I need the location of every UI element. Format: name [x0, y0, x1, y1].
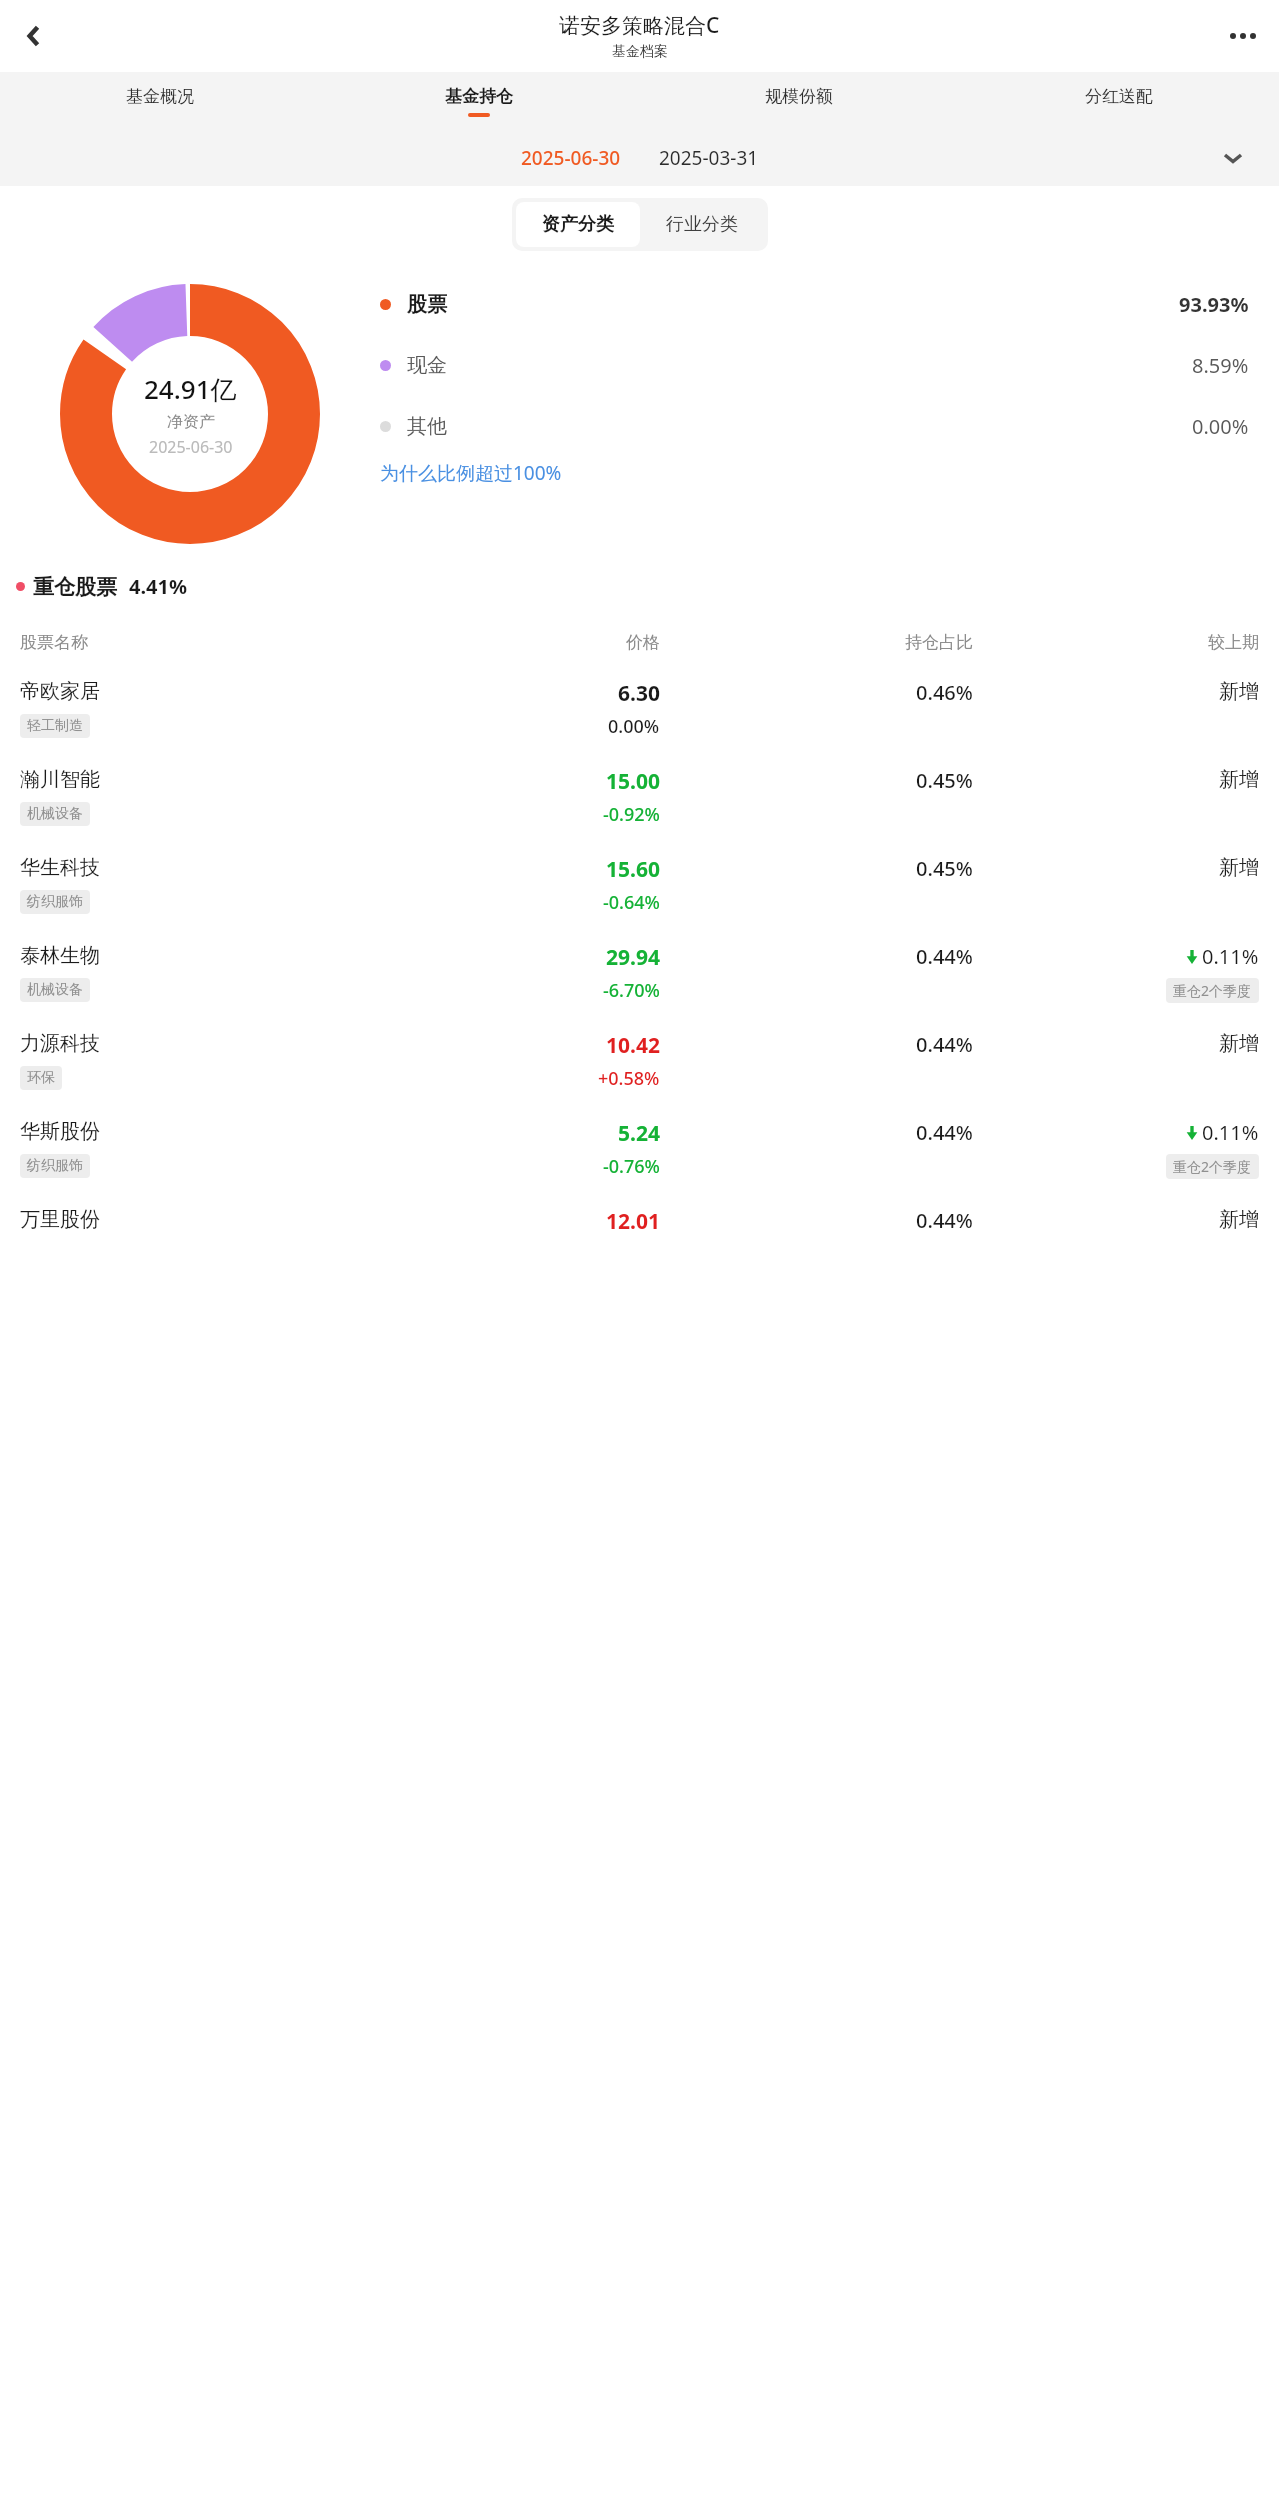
- staticText: 纺织服饰: [27, 1157, 83, 1175]
- button[interactable]: 为什么比例超过100%: [380, 460, 562, 486]
- staticText: 华生科技: [20, 855, 100, 880]
- staticText: 基金档案: [612, 43, 668, 61]
- staticText: 瀚川智能: [20, 767, 100, 792]
- button[interactable]: 分红送配: [959, 72, 1279, 130]
- staticText: 资产分类: [542, 213, 614, 236]
- button[interactable]: 泰林生物: [0, 925, 1279, 1013]
- staticText: 0.44%: [916, 943, 973, 970]
- staticText: 93.93%: [1179, 291, 1249, 318]
- staticText: 0.11%: [1202, 1119, 1259, 1146]
- staticText: 29.94: [606, 943, 660, 972]
- staticText: 新增: [1219, 679, 1259, 704]
- button[interactable]: 基金持仓: [319, 72, 639, 130]
- button[interactable]: 帝欧家居: [0, 661, 1279, 749]
- staticText: 0.44%: [916, 1207, 973, 1234]
- staticText: 规模份额: [765, 86, 833, 107]
- staticText: 15.00: [606, 767, 660, 796]
- button[interactable]: More options: [1219, 12, 1267, 60]
- staticText: 重仓股票: [33, 574, 117, 600]
- staticText: 较上期: [973, 632, 1259, 653]
- button[interactable]: 华斯股份: [0, 1101, 1279, 1189]
- staticText: 机械设备: [27, 981, 83, 999]
- staticText: 0.11%: [1202, 943, 1259, 970]
- button[interactable]: 2025-03-31: [651, 145, 767, 171]
- button[interactable]: 力源科技: [0, 1013, 1279, 1101]
- staticText: 0.44%: [916, 1119, 973, 1146]
- staticText: 重仓2个季度: [1173, 1157, 1252, 1176]
- staticText: 5.24: [618, 1119, 660, 1148]
- button[interactable]: Expand dates: [1213, 138, 1253, 178]
- staticText: 纺织服饰: [27, 893, 83, 911]
- staticText: 0.45%: [916, 767, 973, 794]
- staticText: 股票名称: [20, 632, 388, 653]
- staticText: 基金概况: [126, 86, 194, 107]
- staticText: 行业分类: [666, 213, 738, 236]
- staticText: 新增: [1219, 767, 1259, 792]
- staticText: 价格: [388, 632, 660, 653]
- staticText: 为什么比例超过100%: [380, 460, 562, 486]
- staticText: 帝欧家居: [20, 679, 100, 704]
- button[interactable]: 基金概况: [0, 72, 319, 130]
- staticText: -0.64%: [603, 890, 660, 915]
- staticText: -0.92%: [603, 802, 660, 827]
- staticText: 2025-03-31: [659, 145, 759, 171]
- staticText: 8.59%: [1192, 352, 1249, 379]
- staticText: 持仓占比: [660, 632, 973, 653]
- staticText: 0.00%: [1192, 413, 1249, 440]
- staticText: 力源科技: [20, 1031, 100, 1056]
- staticText: 基金持仓: [445, 86, 513, 107]
- staticText: 环保: [27, 1069, 55, 1087]
- staticText: 2025-06-30: [521, 145, 621, 171]
- staticText: 0.00%: [608, 714, 660, 739]
- staticText: -6.70%: [603, 978, 660, 1003]
- staticText: 6.30: [618, 679, 660, 708]
- button[interactable]: 行业分类: [640, 202, 764, 247]
- staticText: 0.46%: [916, 679, 973, 706]
- staticText: 机械设备: [27, 805, 83, 823]
- staticText: 净资产: [167, 412, 215, 432]
- button[interactable]: 瀚川智能: [0, 749, 1279, 837]
- staticText: 10.42: [606, 1031, 660, 1060]
- staticText: 24.91亿: [144, 371, 237, 407]
- staticText: 15.60: [606, 855, 660, 884]
- button[interactable]: 万里股份: [0, 1189, 1279, 1246]
- staticText: 4.41%: [129, 573, 187, 600]
- staticText: 新增: [1219, 1031, 1259, 1056]
- staticText: 轻工制造: [27, 717, 83, 735]
- staticText: 0.45%: [916, 855, 973, 882]
- staticText: 分红送配: [1085, 86, 1153, 107]
- button[interactable]: 规模份额: [639, 72, 959, 130]
- staticText: 现金: [407, 353, 447, 378]
- staticText: 12.01: [606, 1207, 660, 1236]
- button[interactable]: 华生科技: [0, 837, 1279, 925]
- staticText: 新增: [1219, 855, 1259, 880]
- staticText: 万里股份: [20, 1207, 100, 1232]
- staticText: 泰林生物: [20, 943, 100, 968]
- button[interactable]: 2025-06-30: [513, 145, 629, 171]
- staticText: -0.76%: [603, 1154, 660, 1179]
- staticText: 新增: [1219, 1207, 1259, 1232]
- staticText: 华斯股份: [20, 1119, 100, 1144]
- staticText: 2025-06-30: [149, 436, 233, 458]
- staticText: 重仓2个季度: [1173, 981, 1252, 1000]
- button[interactable]: Back: [10, 12, 58, 60]
- staticText: 0.44%: [916, 1031, 973, 1058]
- button[interactable]: 资产分类: [516, 202, 640, 247]
- staticText: +0.58%: [598, 1066, 660, 1091]
- staticText: 诺安多策略混合C: [559, 11, 720, 40]
- staticText: 其他: [407, 414, 447, 439]
- staticText: 股票: [407, 292, 447, 317]
